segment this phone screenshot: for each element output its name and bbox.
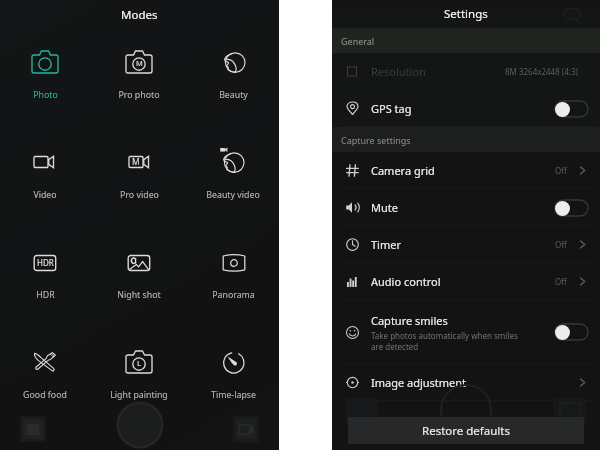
button[interactable]: Night shot: [93, 247, 185, 309]
button[interactable]: Capture smiles: [332, 300, 600, 364]
staticText: GPS tag: [371, 101, 412, 116]
button[interactable]: Beauty video: [187, 147, 279, 209]
button[interactable]: Panorama: [187, 247, 279, 309]
staticText: 8M 3264x2448 (4:3): [505, 66, 578, 77]
staticText: Timer: [371, 237, 401, 252]
staticText: Good food: [23, 389, 67, 401]
staticText: Time-lapse: [211, 389, 256, 401]
button[interactable]: HDR: [0, 247, 91, 309]
staticText: Capture settings: [341, 134, 411, 146]
staticText: M: [132, 156, 140, 168]
button[interactable]: Photo: [0, 47, 91, 109]
staticText: Photo: [33, 89, 58, 101]
button[interactable]: M: [93, 147, 185, 209]
button[interactable]: Camera grid: [332, 152, 600, 189]
button[interactable]: L: [93, 347, 185, 409]
staticText: Take photos automatically when smiles ar…: [371, 330, 518, 352]
button[interactable]: Gallery: [20, 416, 46, 442]
staticText: General: [341, 35, 375, 47]
button[interactable]: Switch to video: [233, 416, 259, 442]
staticText: Panorama: [212, 289, 255, 301]
staticText: Resolution: [371, 64, 426, 79]
staticText: HDR: [37, 257, 54, 268]
button[interactable]: Image adjustment: [332, 364, 600, 401]
staticText: Image adjustment: [371, 375, 467, 390]
staticText: Settings: [444, 6, 488, 22]
staticText: Modes: [121, 7, 158, 23]
staticText: Off: [555, 165, 567, 176]
button[interactable]: Mute: [332, 189, 600, 226]
staticText: Mute: [371, 200, 398, 215]
button[interactable]: Video: [0, 147, 91, 209]
staticText: Pro video: [120, 189, 159, 201]
staticText: Camera grid: [371, 163, 435, 178]
staticText: Restore defaults: [422, 423, 510, 439]
button[interactable]: Help: [562, 4, 582, 24]
button[interactable]: Beauty: [187, 47, 279, 109]
staticText: Beauty: [219, 89, 248, 101]
button[interactable]: GPS tag: [332, 90, 600, 127]
button[interactable]: Good food: [0, 347, 91, 409]
button[interactable]: Resolution: [332, 53, 600, 90]
staticText: Off: [555, 239, 567, 250]
staticText: Pro photo: [118, 89, 160, 101]
button[interactable]: Timer: [332, 226, 600, 263]
staticText: M: [136, 58, 143, 68]
staticText: L: [137, 358, 141, 368]
staticText: Night shot: [117, 289, 161, 301]
staticText: Video: [33, 189, 57, 201]
button[interactable]: Shutter: [116, 401, 164, 449]
staticText: HDR: [36, 289, 55, 301]
button[interactable]: Audio control: [332, 263, 600, 300]
staticText: Off: [555, 276, 567, 287]
button[interactable]: Time-lapse: [187, 347, 279, 409]
button[interactable]: Restore defaults: [348, 417, 584, 444]
staticText: Capture smiles: [371, 313, 448, 328]
button[interactable]: M: [93, 47, 185, 109]
staticText: Light painting: [110, 389, 168, 401]
staticText: Audio control: [371, 274, 441, 289]
staticText: Beauty video: [206, 189, 260, 201]
